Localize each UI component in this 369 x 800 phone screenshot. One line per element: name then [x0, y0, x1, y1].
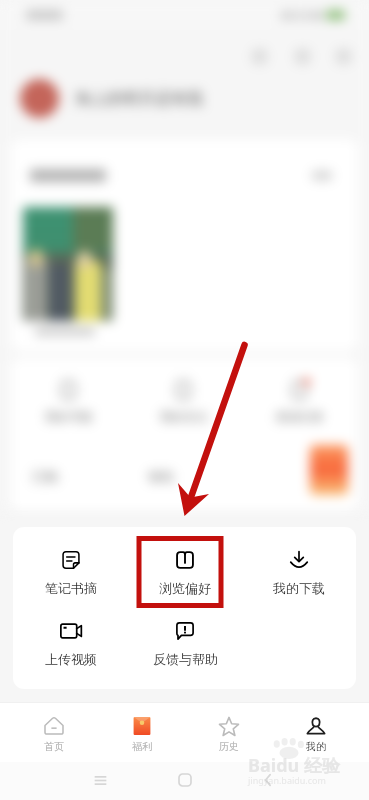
button[interactable]: 福利	[98, 702, 185, 762]
button[interactable]: 我的下载	[242, 533, 356, 596]
staticText: 反馈与帮助	[153, 651, 218, 667]
button[interactable]: 浏览偏好	[128, 533, 242, 596]
staticText: 我的关注	[160, 409, 208, 424]
button[interactable]: 反馈与帮助	[128, 604, 242, 667]
staticText: 已购	[32, 468, 58, 484]
button[interactable]: 上传视频	[13, 604, 128, 667]
staticText: 笔记书摘	[45, 580, 97, 596]
staticText: Baidu 经验	[248, 753, 340, 778]
button[interactable]: Recents	[90, 770, 110, 790]
staticText: 历史	[219, 740, 239, 753]
button[interactable]: Home	[175, 770, 195, 790]
staticText: 上传视频	[45, 651, 97, 667]
button[interactable]: 笔记书摘	[13, 533, 128, 596]
staticText: 阅读记录	[276, 409, 324, 424]
staticText: 首页	[44, 740, 64, 753]
button[interactable]: 我的	[272, 702, 359, 762]
button[interactable]: 首页	[10, 702, 98, 762]
button[interactable]: Back	[258, 770, 278, 790]
staticText: 我的	[306, 740, 326, 753]
staticText: 浏览偏好	[159, 580, 211, 596]
staticText: 海上的明月还有我	[75, 89, 203, 109]
staticText: 我的下载	[273, 580, 325, 596]
staticText: jingyan.baidu.com	[248, 774, 326, 786]
staticText: 福利	[132, 740, 152, 753]
button[interactable]: 历史	[185, 702, 272, 762]
staticText: 我的书架	[45, 409, 93, 424]
staticText: 钱包	[148, 468, 174, 484]
